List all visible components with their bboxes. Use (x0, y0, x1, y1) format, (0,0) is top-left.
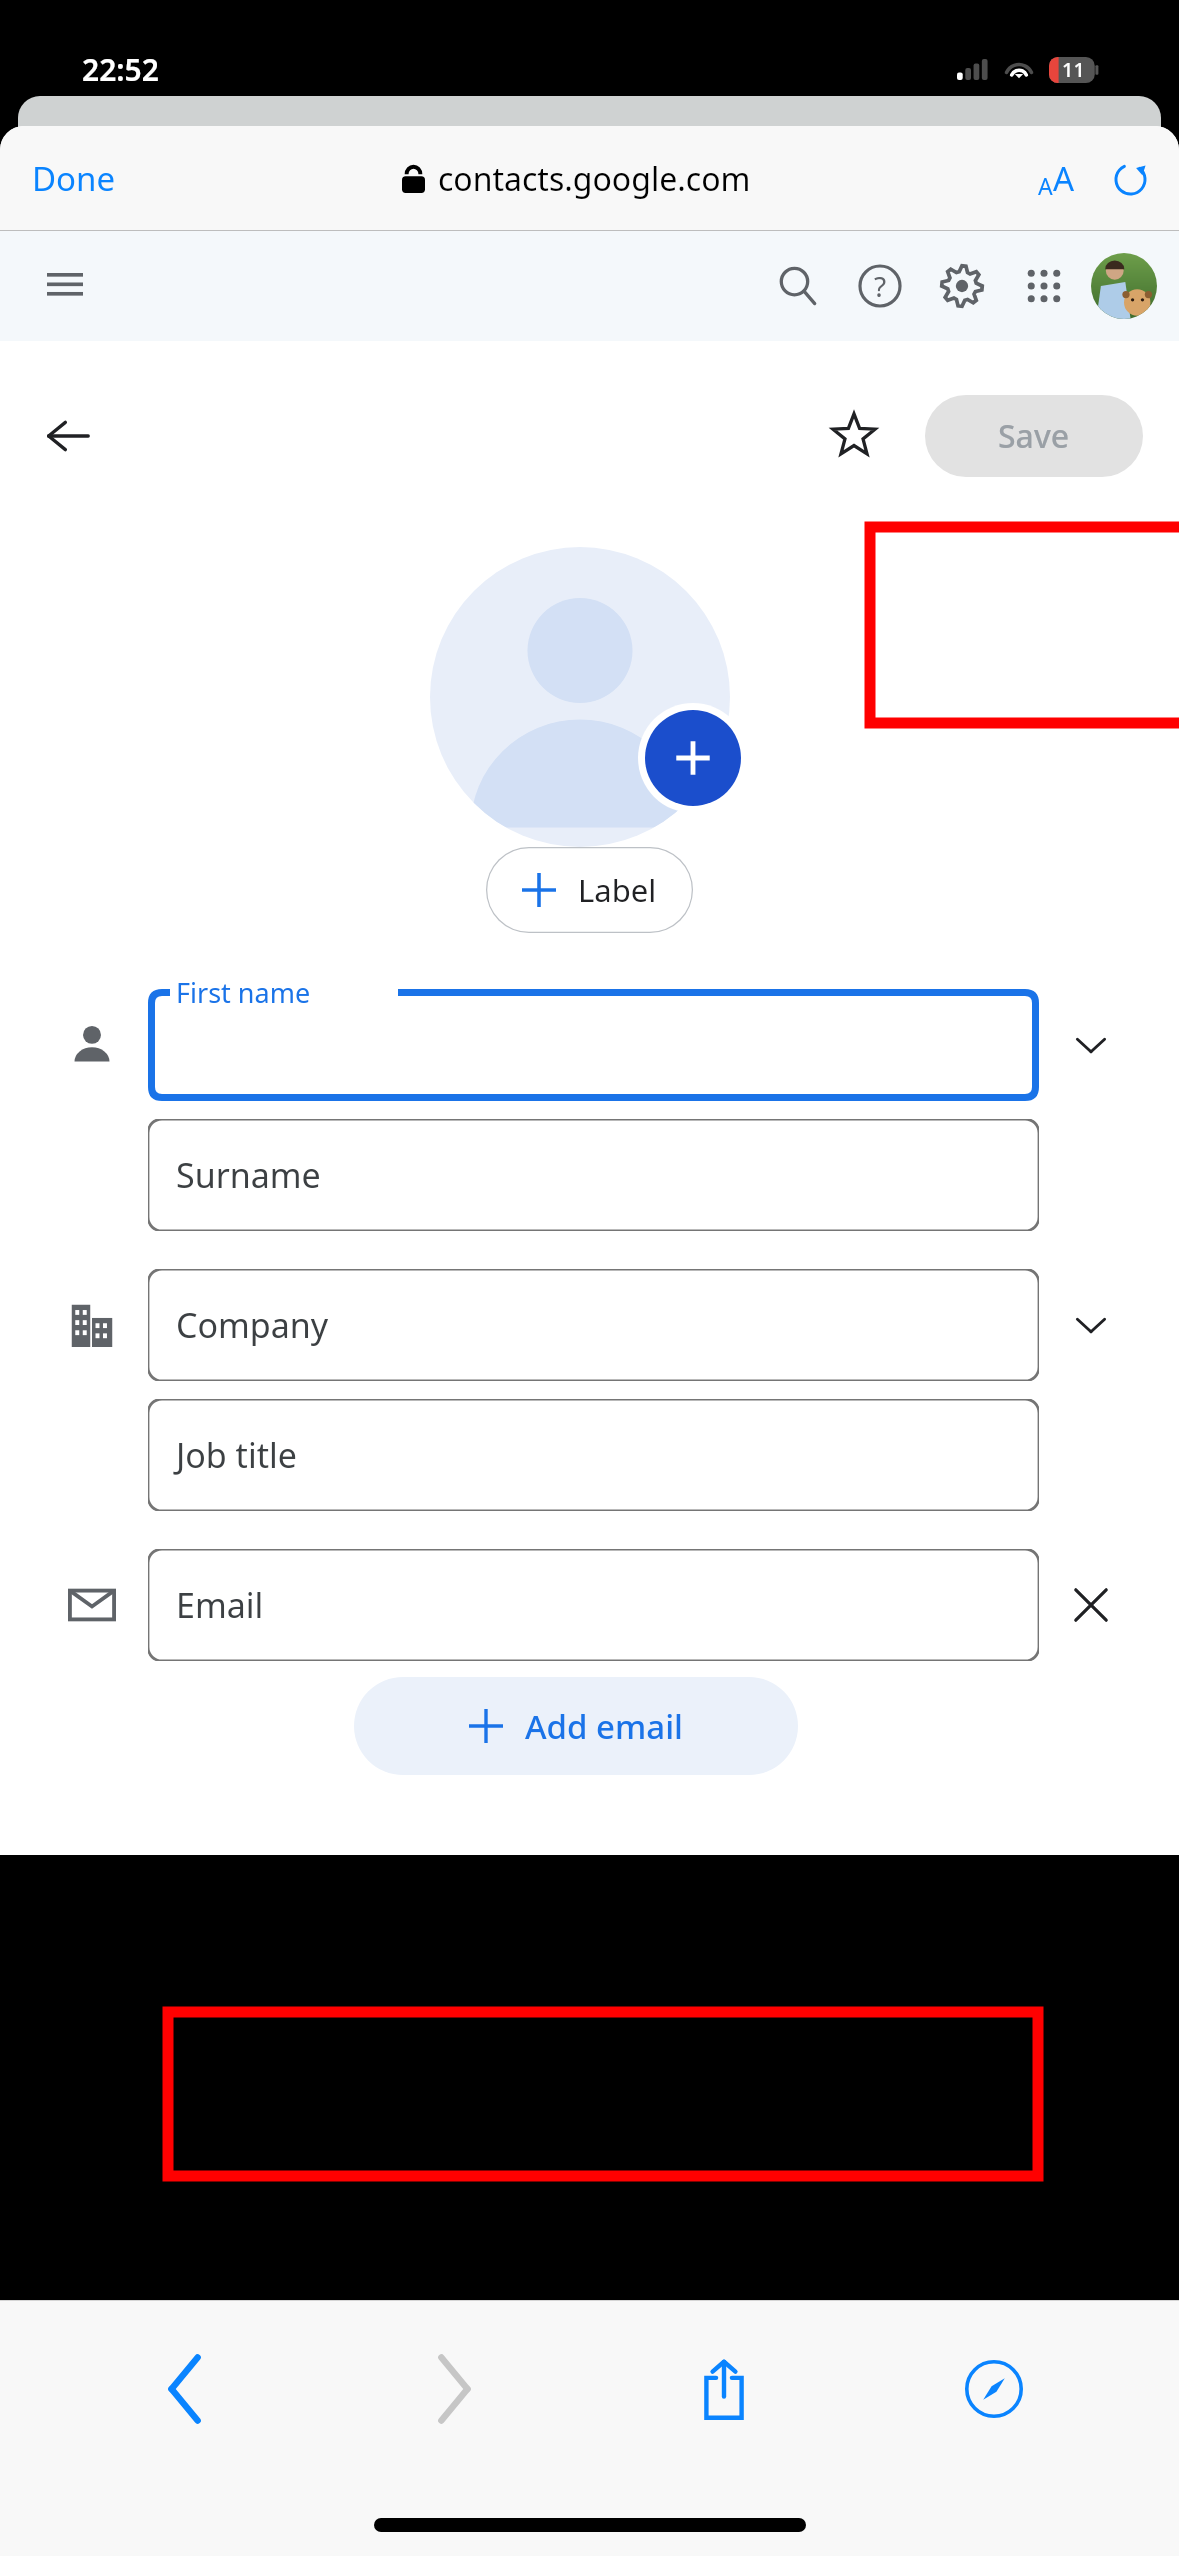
button[interactable]: Back (50, 2330, 319, 2448)
button[interactable]: Add photo (430, 547, 730, 847)
button[interactable]: Save (925, 395, 1143, 477)
button[interactable]: Expand (1060, 1014, 1122, 1076)
button[interactable]: Surname (148, 1119, 1039, 1231)
staticText: Company (176, 1302, 329, 1348)
button[interactable]: Google Account (1091, 253, 1157, 319)
button[interactable]: Main menu (38, 259, 92, 313)
staticText: First name (176, 974, 311, 1011)
staticText: Done (32, 156, 116, 201)
button[interactable]: Add photo (645, 710, 741, 806)
button[interactable]: First name (148, 989, 1039, 1101)
button[interactable]: Done (26, 146, 122, 211)
staticText: Add email (525, 1704, 684, 1749)
button[interactable]: Add email (354, 1677, 798, 1775)
button[interactable]: Share (589, 2330, 859, 2448)
button[interactable]: Help (851, 257, 909, 315)
staticText: A (1053, 156, 1075, 201)
button[interactable]: Clear email (1060, 1574, 1122, 1636)
button[interactable]: Label (486, 847, 693, 933)
staticText: 11 (1062, 56, 1085, 83)
button[interactable]: Forward (319, 2330, 589, 2448)
staticText: Surname (176, 1152, 321, 1198)
button[interactable]: Tabs (859, 2330, 1129, 2448)
button[interactable]: Expand (1060, 1294, 1122, 1356)
button[interactable]: Search (769, 257, 827, 315)
button[interactable]: Reload (1107, 156, 1153, 202)
button[interactable]: Company (148, 1269, 1039, 1381)
staticText: Job title (176, 1432, 297, 1478)
button[interactable]: Settings (933, 257, 991, 315)
staticText: contacts.google.com (438, 157, 751, 201)
staticText: 22:52 (82, 49, 159, 90)
staticText: A (1038, 170, 1053, 201)
button[interactable]: Favourite (819, 401, 889, 471)
button[interactable]: Job title (148, 1399, 1039, 1511)
button[interactable]: Text size (1032, 144, 1081, 213)
staticText: ? (874, 267, 887, 305)
button[interactable]: Google apps (1015, 257, 1073, 315)
button[interactable]: Back (34, 402, 102, 470)
staticText: Save (998, 414, 1070, 458)
button[interactable]: Email (148, 1549, 1039, 1661)
button[interactable]: contacts.google.com (396, 151, 757, 207)
staticText: Email (176, 1582, 264, 1628)
staticText: Label (578, 869, 657, 911)
